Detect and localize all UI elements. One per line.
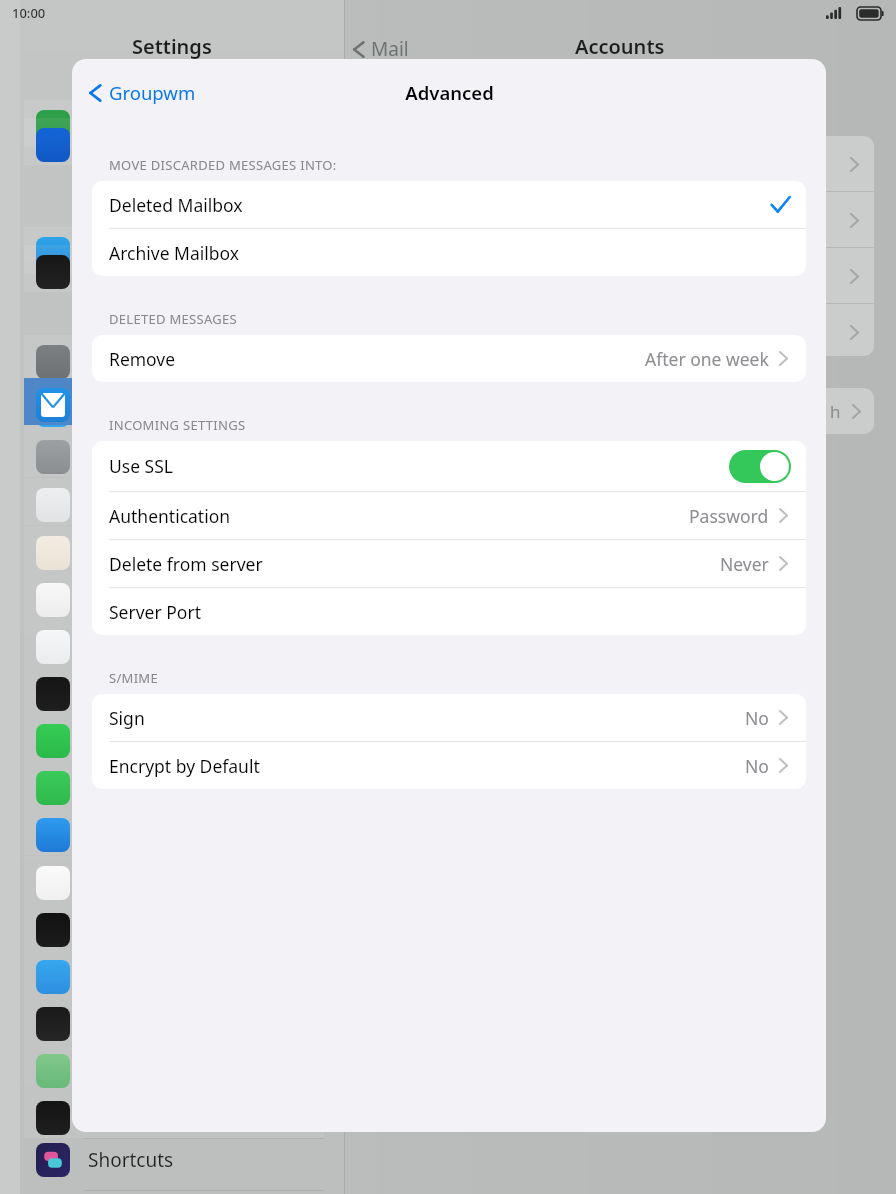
staticText: Mail [371,36,409,62]
staticText: Deleted Mailbox [109,193,243,217]
staticText: Sign [109,706,145,730]
staticText: Remove [109,347,176,371]
staticText: No [745,754,769,778]
staticText: DELETED MESSAGES [109,310,238,328]
staticText: No [745,706,769,730]
button[interactable]: Use SSL toggle [729,450,791,483]
button[interactable]: Sign [92,694,806,741]
button[interactable]: Groupwm [84,76,200,109]
staticText: INCOMING SETTINGS [109,416,246,434]
button[interactable]: Archive Mailbox [92,229,806,276]
staticText: Advanced [405,80,494,105]
staticText: Server Port [109,600,201,624]
staticText: Password [689,504,769,528]
staticText: Use SSL [109,454,173,478]
staticText: Never [720,552,769,576]
button[interactable]: Remove [92,335,806,382]
button[interactable]: Encrypt by Default [92,742,806,789]
staticText: S/MIME [109,669,158,687]
staticText: Authentication [109,504,231,528]
staticText: Settings [132,33,212,60]
staticText: 10:00 [12,4,46,22]
staticText: h [830,400,841,423]
staticText: Encrypt by Default [109,754,260,778]
button[interactable]: Deleted Mailbox [92,181,806,228]
button[interactable]: Server Port [92,588,806,635]
button[interactable]: Use SSL [92,441,806,491]
staticText: Archive Mailbox [109,241,240,265]
staticText: Shortcuts [88,1147,174,1173]
staticText: MOVE DISCARDED MESSAGES INTO: [109,156,337,174]
button[interactable]: Authentication [92,492,806,539]
button[interactable]: Delete from server [92,540,806,587]
staticText: After one week [645,347,769,371]
staticText: Groupwm [109,80,196,105]
staticText: Delete from server [109,552,263,576]
staticText: Accounts [575,33,665,60]
